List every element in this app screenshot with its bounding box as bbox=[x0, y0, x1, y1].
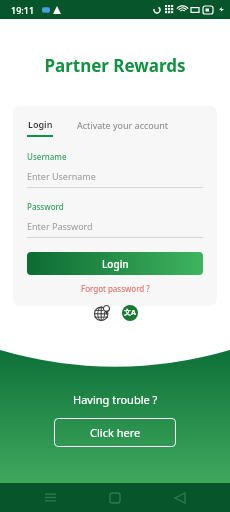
staticText: Login bbox=[102, 257, 129, 271]
staticText: 文A bbox=[124, 308, 136, 318]
staticText: Enter Password bbox=[27, 220, 93, 232]
staticText: 19:11 bbox=[11, 4, 35, 16]
button[interactable]: Login bbox=[27, 118, 53, 137]
button[interactable]: Recents bbox=[35, 483, 65, 512]
button[interactable]: Click here bbox=[54, 418, 176, 447]
button[interactable]: Login bbox=[27, 252, 203, 275]
button[interactable]: Home bbox=[100, 483, 130, 512]
button[interactable]: Forgot password ? bbox=[81, 283, 150, 294]
staticText: Activate your account bbox=[77, 119, 169, 131]
staticText: Password bbox=[27, 201, 64, 212]
staticText: Username bbox=[27, 151, 67, 162]
staticText: Enter Username bbox=[27, 170, 96, 182]
button[interactable]: Change language bbox=[122, 305, 138, 321]
staticText: Partner Rewards bbox=[44, 54, 186, 77]
button[interactable]: Enter Username bbox=[27, 170, 203, 182]
button[interactable]: Select region bbox=[93, 304, 111, 322]
staticText: Login bbox=[28, 118, 53, 130]
staticText: Having trouble ? bbox=[73, 392, 158, 407]
staticText: Forgot password ? bbox=[81, 283, 150, 294]
button[interactable]: Activate your account bbox=[77, 119, 169, 131]
button[interactable]: Enter Password bbox=[27, 220, 203, 232]
staticText: Click here bbox=[90, 425, 141, 440]
button[interactable]: Back bbox=[165, 483, 195, 512]
